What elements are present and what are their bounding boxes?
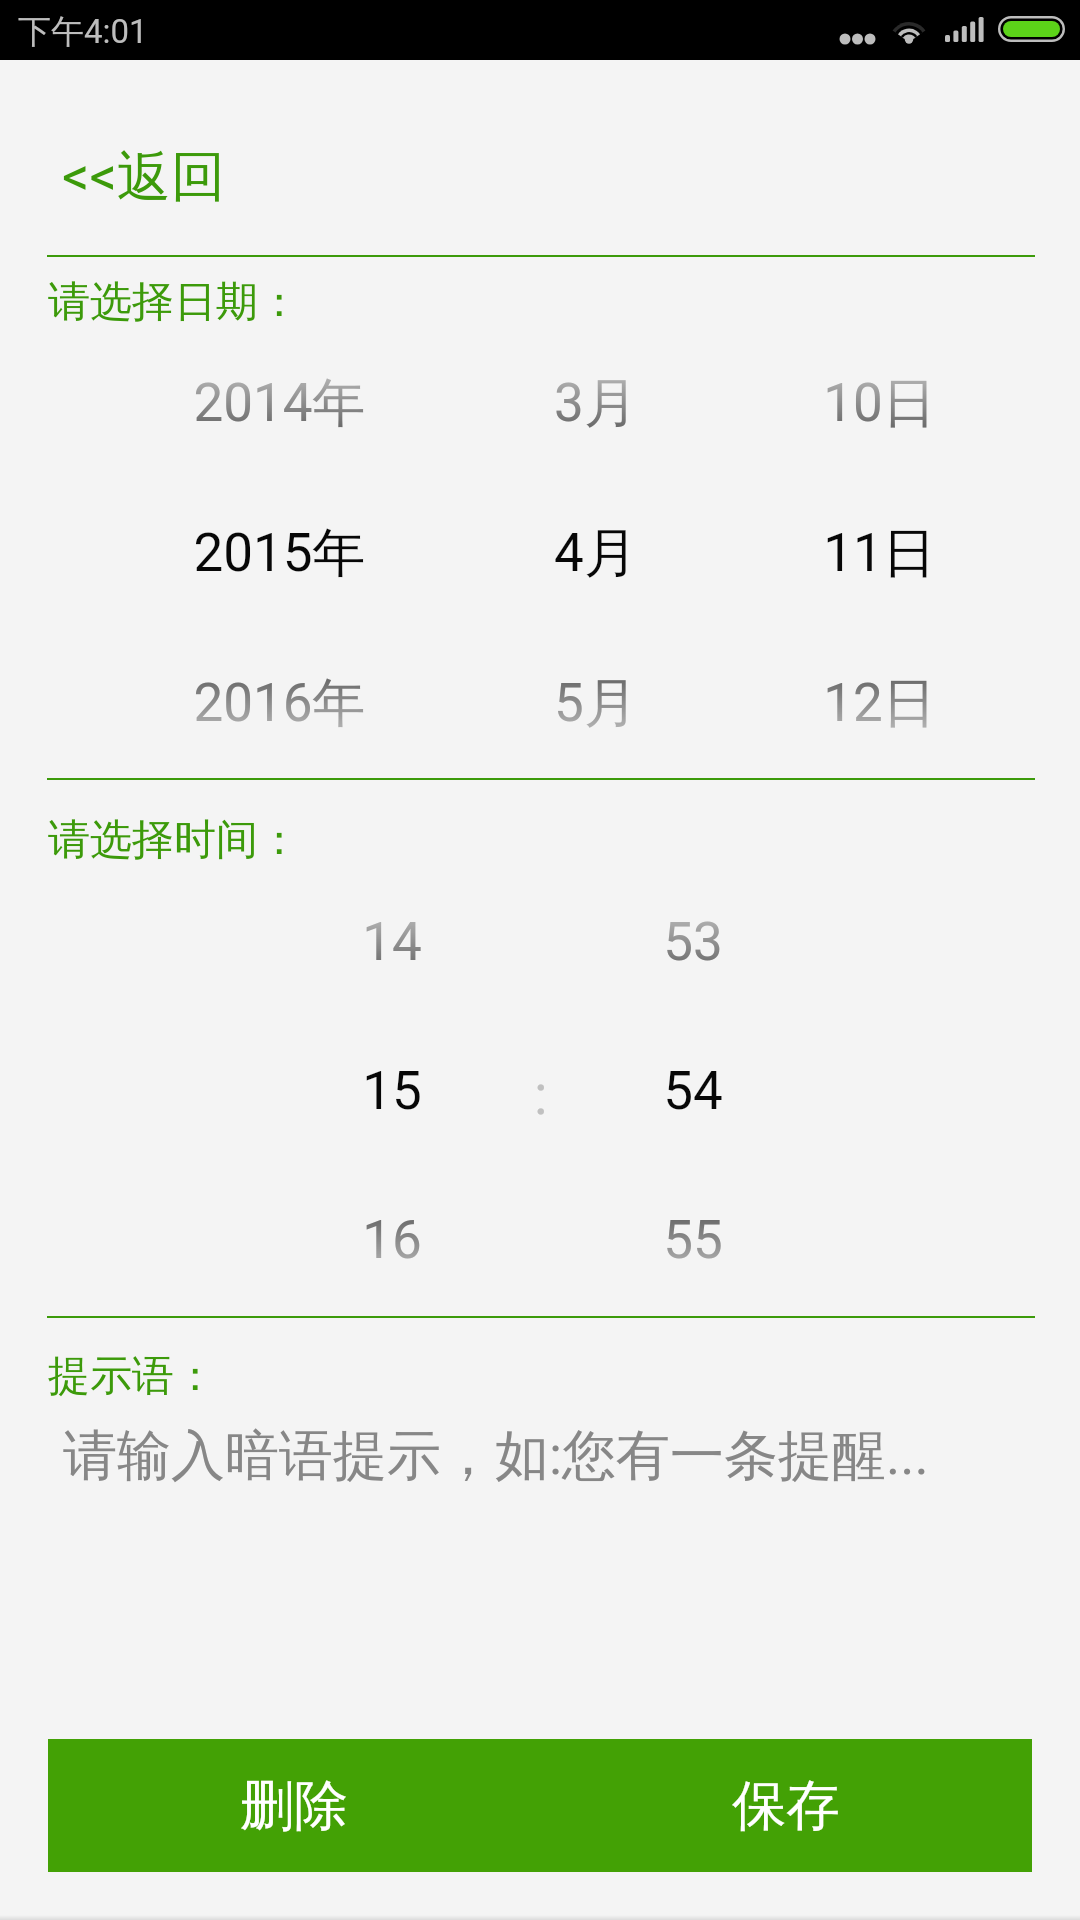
staticText: 2016年 [193,670,366,737]
staticText: : [534,1062,548,1128]
other: Status icons [0,0,1080,60]
staticText: 保存 [732,1772,840,1840]
button[interactable]: 2016年 [149,651,409,755]
staticText: 53 [663,911,723,973]
button[interactable]: 16 [262,1188,522,1292]
staticText: 2015年 [193,520,366,587]
staticText: <<返回 [62,143,225,211]
staticText: 提示语： [48,1350,216,1403]
staticText: 14 [362,911,422,973]
button[interactable]: 5月 [465,651,725,755]
button[interactable]: 4月 [465,501,725,605]
staticText: 55 [663,1209,723,1271]
button[interactable]: 14 [262,890,522,994]
staticText: 下午4:01 [18,11,148,53]
button[interactable]: 54 [563,1039,823,1143]
button[interactable]: 12日 [749,651,1009,755]
button[interactable]: 11日 [749,501,1009,605]
button[interactable]: 请输入暗语提示，如:您有一条提醒... [48,1405,1032,1500]
button[interactable]: 53 [563,890,823,994]
staticText: 删除 [240,1772,348,1840]
staticText: 10日 [823,370,936,437]
button[interactable]: 返回 Back [43,127,243,227]
button[interactable]: 10日 [749,351,1009,455]
button[interactable]: 2015年 [149,501,409,605]
staticText: 11日 [823,520,936,587]
button[interactable]: 3月 [465,351,725,455]
staticText: 2014年 [193,370,366,437]
button[interactable]: 15 [262,1039,522,1143]
staticText: 15 [362,1060,422,1122]
staticText: 12日 [823,670,936,737]
staticText: 16 [362,1209,422,1271]
staticText: 3月 [554,370,637,437]
staticText: 5月 [554,670,637,737]
button[interactable]: 55 [563,1188,823,1292]
button[interactable]: 2014年 [149,351,409,455]
staticText: 请选择时间： [48,814,300,867]
staticText: 请选择日期： [48,276,300,329]
staticText: 请输入暗语提示，如:您有一条提醒... [63,1422,929,1490]
staticText: 4月 [554,520,637,587]
button[interactable]: 保存 [540,1739,1032,1872]
button[interactable]: 删除 [48,1739,540,1872]
staticText: 54 [663,1060,723,1122]
